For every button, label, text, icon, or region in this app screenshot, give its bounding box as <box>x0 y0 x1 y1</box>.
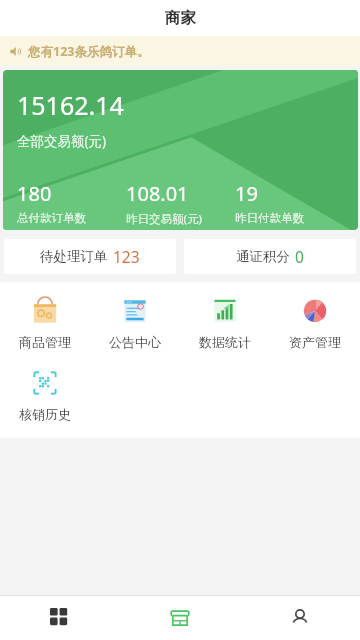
staticText: 资产管理 <box>289 334 341 350</box>
button[interactable]: 商品管理 <box>0 294 90 352</box>
button[interactable]: Apps <box>0 596 120 640</box>
staticText: 15162.14 <box>17 88 124 122</box>
staticText: 总付款订单数 <box>17 211 86 225</box>
staticText: 商家 <box>165 8 196 28</box>
button[interactable]: Profile <box>240 596 360 640</box>
staticText: 180 <box>17 180 52 207</box>
staticText: 昨日交易额(元) <box>126 211 202 227</box>
button[interactable]: 通证积分 <box>184 239 356 274</box>
button[interactable]: 公告中心 <box>90 294 180 352</box>
staticText: 0 <box>295 246 304 267</box>
button[interactable]: 资产管理 <box>270 294 360 352</box>
staticText: 待处理订单 <box>40 248 108 265</box>
staticText: 核销历史 <box>19 406 71 422</box>
staticText: 公告中心 <box>109 334 161 350</box>
button[interactable]: Store <box>120 596 240 640</box>
button[interactable]: 您有123条乐鸽订单。 <box>0 36 360 66</box>
staticText: 通证积分 <box>236 248 290 265</box>
button[interactable]: 待处理订单 <box>4 239 176 274</box>
staticText: 商品管理 <box>19 334 71 350</box>
button[interactable]: 15162.14 <box>3 70 358 230</box>
staticText: 数据统计 <box>199 334 251 350</box>
staticText: 您有123条乐鸽订单。 <box>28 43 150 60</box>
staticText: 123 <box>113 246 140 267</box>
staticText: 108.01 <box>126 180 189 207</box>
button[interactable]: 核销历史 <box>0 366 90 424</box>
staticText: 19 <box>235 180 258 207</box>
staticText: 昨日付款单数 <box>235 211 304 225</box>
button[interactable]: 数据统计 <box>180 294 270 352</box>
staticText: 全部交易额(元) <box>17 132 107 150</box>
